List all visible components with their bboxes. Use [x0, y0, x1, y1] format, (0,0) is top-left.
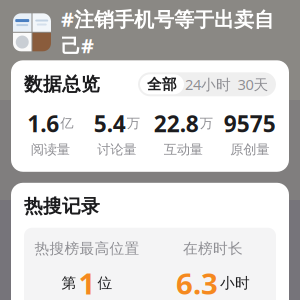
staticText: 讨论量 — [97, 141, 136, 158]
staticText: 阅读量 — [31, 141, 70, 158]
staticText: 9575 — [224, 108, 276, 138]
staticText: 5.4 — [94, 108, 126, 138]
staticText: 互动量 — [164, 141, 203, 158]
staticText: 热搜记录 — [24, 195, 100, 218]
staticText: 6.3 — [176, 264, 218, 300]
staticText: 亿 — [60, 115, 73, 132]
staticText: 1.6 — [27, 108, 59, 138]
staticText: 位 — [97, 274, 112, 292]
staticText: 数据总览 — [24, 73, 100, 96]
button[interactable]: 全部 — [140, 74, 184, 94]
staticText: #注销手机号等于出卖自己# — [61, 6, 274, 59]
staticText: 30天 — [237, 75, 268, 94]
staticText: 小时 — [220, 274, 250, 292]
staticText: 热搜榜最高位置 — [34, 240, 139, 258]
staticText: 在榜时长 — [183, 240, 243, 258]
button[interactable]: 24小时 — [184, 74, 232, 94]
staticText: 原创量 — [230, 141, 269, 158]
staticText: 24小时 — [185, 75, 231, 94]
staticText: 第 — [61, 274, 76, 292]
staticText: 万 — [200, 115, 213, 132]
staticText: 1 — [78, 264, 95, 300]
staticText: 全部 — [147, 75, 177, 93]
staticText: 22.8 — [154, 108, 199, 138]
staticText: 万 — [127, 115, 140, 132]
button[interactable]: 30天 — [232, 74, 274, 94]
